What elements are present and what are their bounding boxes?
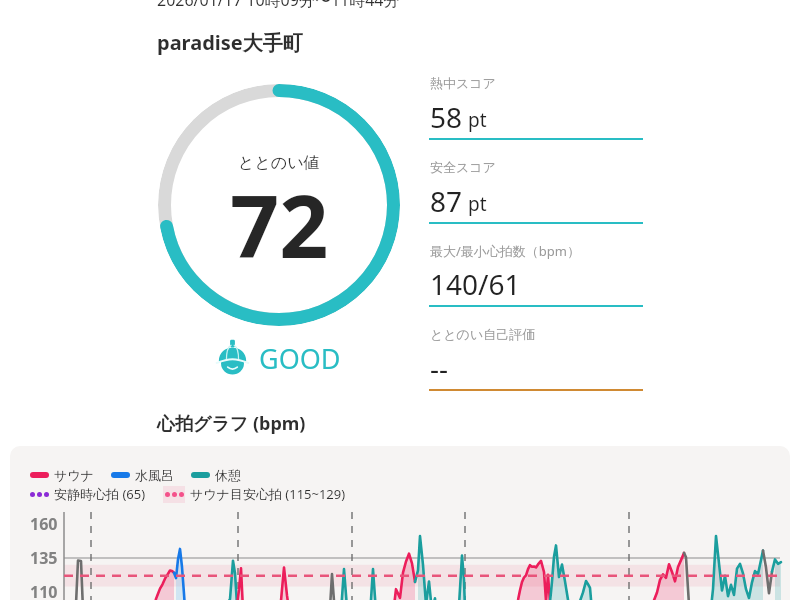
staticText: 水風呂 [135,467,174,483]
staticText: サウナ目安心拍 (115~129) [190,485,346,503]
staticText: pt [468,191,487,217]
staticText: 安静時心拍 (65) [54,485,146,503]
staticText: 87 [430,182,463,220]
button[interactable]: Condition rating [214,335,341,377]
staticText: 熱中スコア [430,75,496,91]
staticText: paradise大手町 [157,29,303,56]
staticText: 最大/最小心拍数（bpm） [430,242,580,260]
staticText: ととのい自己評価 [430,326,536,342]
staticText: 135 [30,547,58,569]
button[interactable]: 安全スコア [430,156,644,226]
button[interactable]: ととのい値 72 [158,84,400,326]
button[interactable]: ととのい自己評価 [430,323,644,393]
staticText: 160 [30,513,58,535]
staticText: 140/61 [430,265,521,303]
staticText: 休憩 [215,467,241,483]
staticText: 安全スコア [430,159,496,175]
other: Condition rating [214,335,251,377]
staticText: -- [430,349,449,387]
staticText: 72 [230,166,329,283]
staticText: pt [468,107,487,133]
staticText: 110 [30,581,58,600]
button[interactable]: 熱中スコア [430,72,644,142]
staticText: サウナ [54,467,94,483]
button[interactable]: 最大/最小心拍数（bpm） [430,239,644,309]
staticText: 2026/01/17 10時09分〜11時44分 [157,0,400,11]
staticText: GOOD [259,340,341,377]
button[interactable]: サウナ [10,446,790,600]
staticText: 心拍グラフ (bpm) [157,411,306,436]
staticText: ととのい値 [238,153,320,173]
staticText: 58 [430,98,463,136]
